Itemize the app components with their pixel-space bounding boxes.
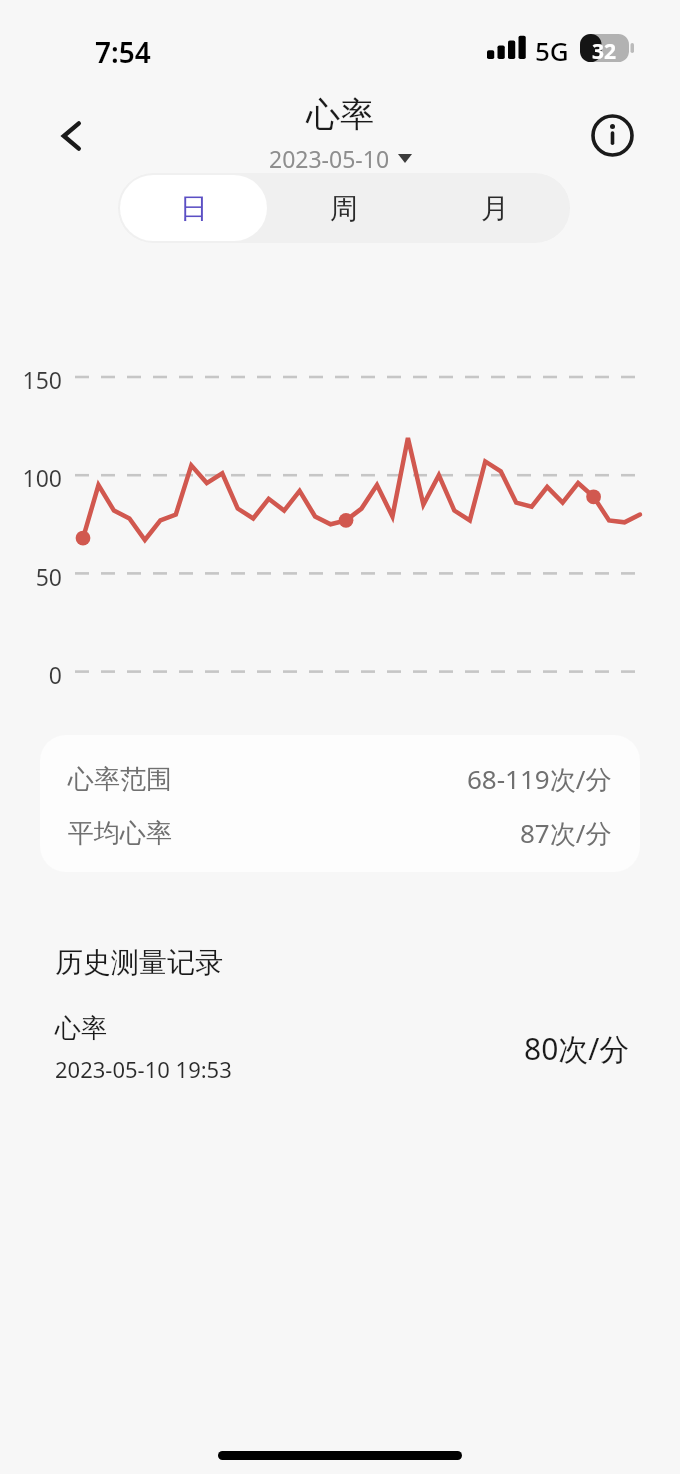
staticText: 日 xyxy=(180,191,208,226)
staticText: 100 xyxy=(0,462,62,493)
staticText: 32 xyxy=(592,37,617,66)
staticText: 87次/分 xyxy=(520,815,612,851)
staticText: 心率 xyxy=(306,93,374,136)
staticText: 50 xyxy=(0,561,62,592)
button[interactable]: Back xyxy=(36,100,108,172)
staticText: 心率 xyxy=(55,1012,107,1045)
staticText: 68-119次/分 xyxy=(467,761,612,797)
button[interactable]: 心率 xyxy=(55,1012,630,1084)
staticText: 月 xyxy=(481,191,509,226)
staticText: 平均心率 xyxy=(68,817,172,850)
staticText: 周 xyxy=(330,191,358,226)
staticText: 2023-05-10 xyxy=(269,143,390,174)
staticText: 5G xyxy=(535,33,569,68)
button[interactable]: 2023-05-10 xyxy=(265,141,416,176)
button[interactable]: 日 xyxy=(120,175,267,241)
staticText: 历史测量记录 xyxy=(55,945,223,980)
button[interactable]: 月 xyxy=(419,173,570,243)
staticText: 7:54 xyxy=(95,33,151,71)
staticText: 心率范围 xyxy=(68,763,172,796)
staticText: 0 xyxy=(0,659,62,690)
staticText: 80次/分 xyxy=(524,1028,630,1069)
button[interactable]: Info xyxy=(578,101,646,169)
staticText: 150 xyxy=(0,364,62,395)
staticText: 2023-05-10 19:53 xyxy=(55,1054,232,1084)
button[interactable]: 周 xyxy=(268,173,419,243)
